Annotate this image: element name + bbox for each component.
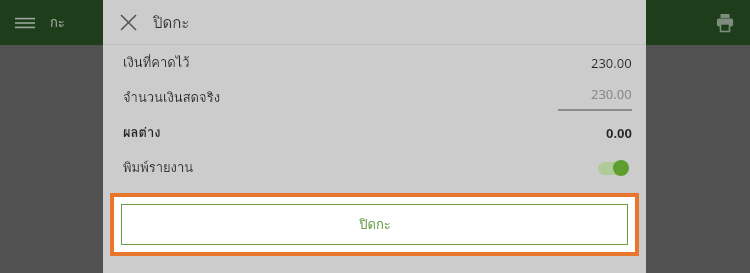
button[interactable]: ปิดกะ bbox=[121, 204, 628, 245]
button[interactable]: พิมพ์รายงาน bbox=[103, 150, 646, 185]
staticText: พิมพ์รายงาน bbox=[123, 157, 194, 178]
button[interactable]: เงินที่คาดไว้ bbox=[103, 45, 646, 80]
staticText: กะ bbox=[50, 12, 65, 33]
staticText: 0.00 bbox=[606, 124, 632, 142]
staticText: เงินที่คาดไว้ bbox=[123, 52, 190, 73]
button[interactable]: Menu bbox=[0, 0, 50, 45]
staticText: จำนวนเงินสดจริง bbox=[123, 87, 220, 108]
button[interactable]: Close bbox=[103, 0, 153, 45]
staticText: 230.00 bbox=[591, 85, 632, 103]
button[interactable]: จำนวนเงินสดจริง bbox=[103, 80, 646, 115]
staticText: 230.00 bbox=[591, 54, 632, 72]
button[interactable]: Print report toggle bbox=[596, 157, 632, 179]
staticText: ปิดกะ bbox=[153, 11, 190, 35]
staticText: ผลต่าง bbox=[123, 122, 161, 143]
button[interactable]: Print bbox=[700, 0, 750, 45]
staticText: ปิดกะ bbox=[359, 214, 391, 235]
button[interactable]: ผลต่าง bbox=[103, 115, 646, 150]
